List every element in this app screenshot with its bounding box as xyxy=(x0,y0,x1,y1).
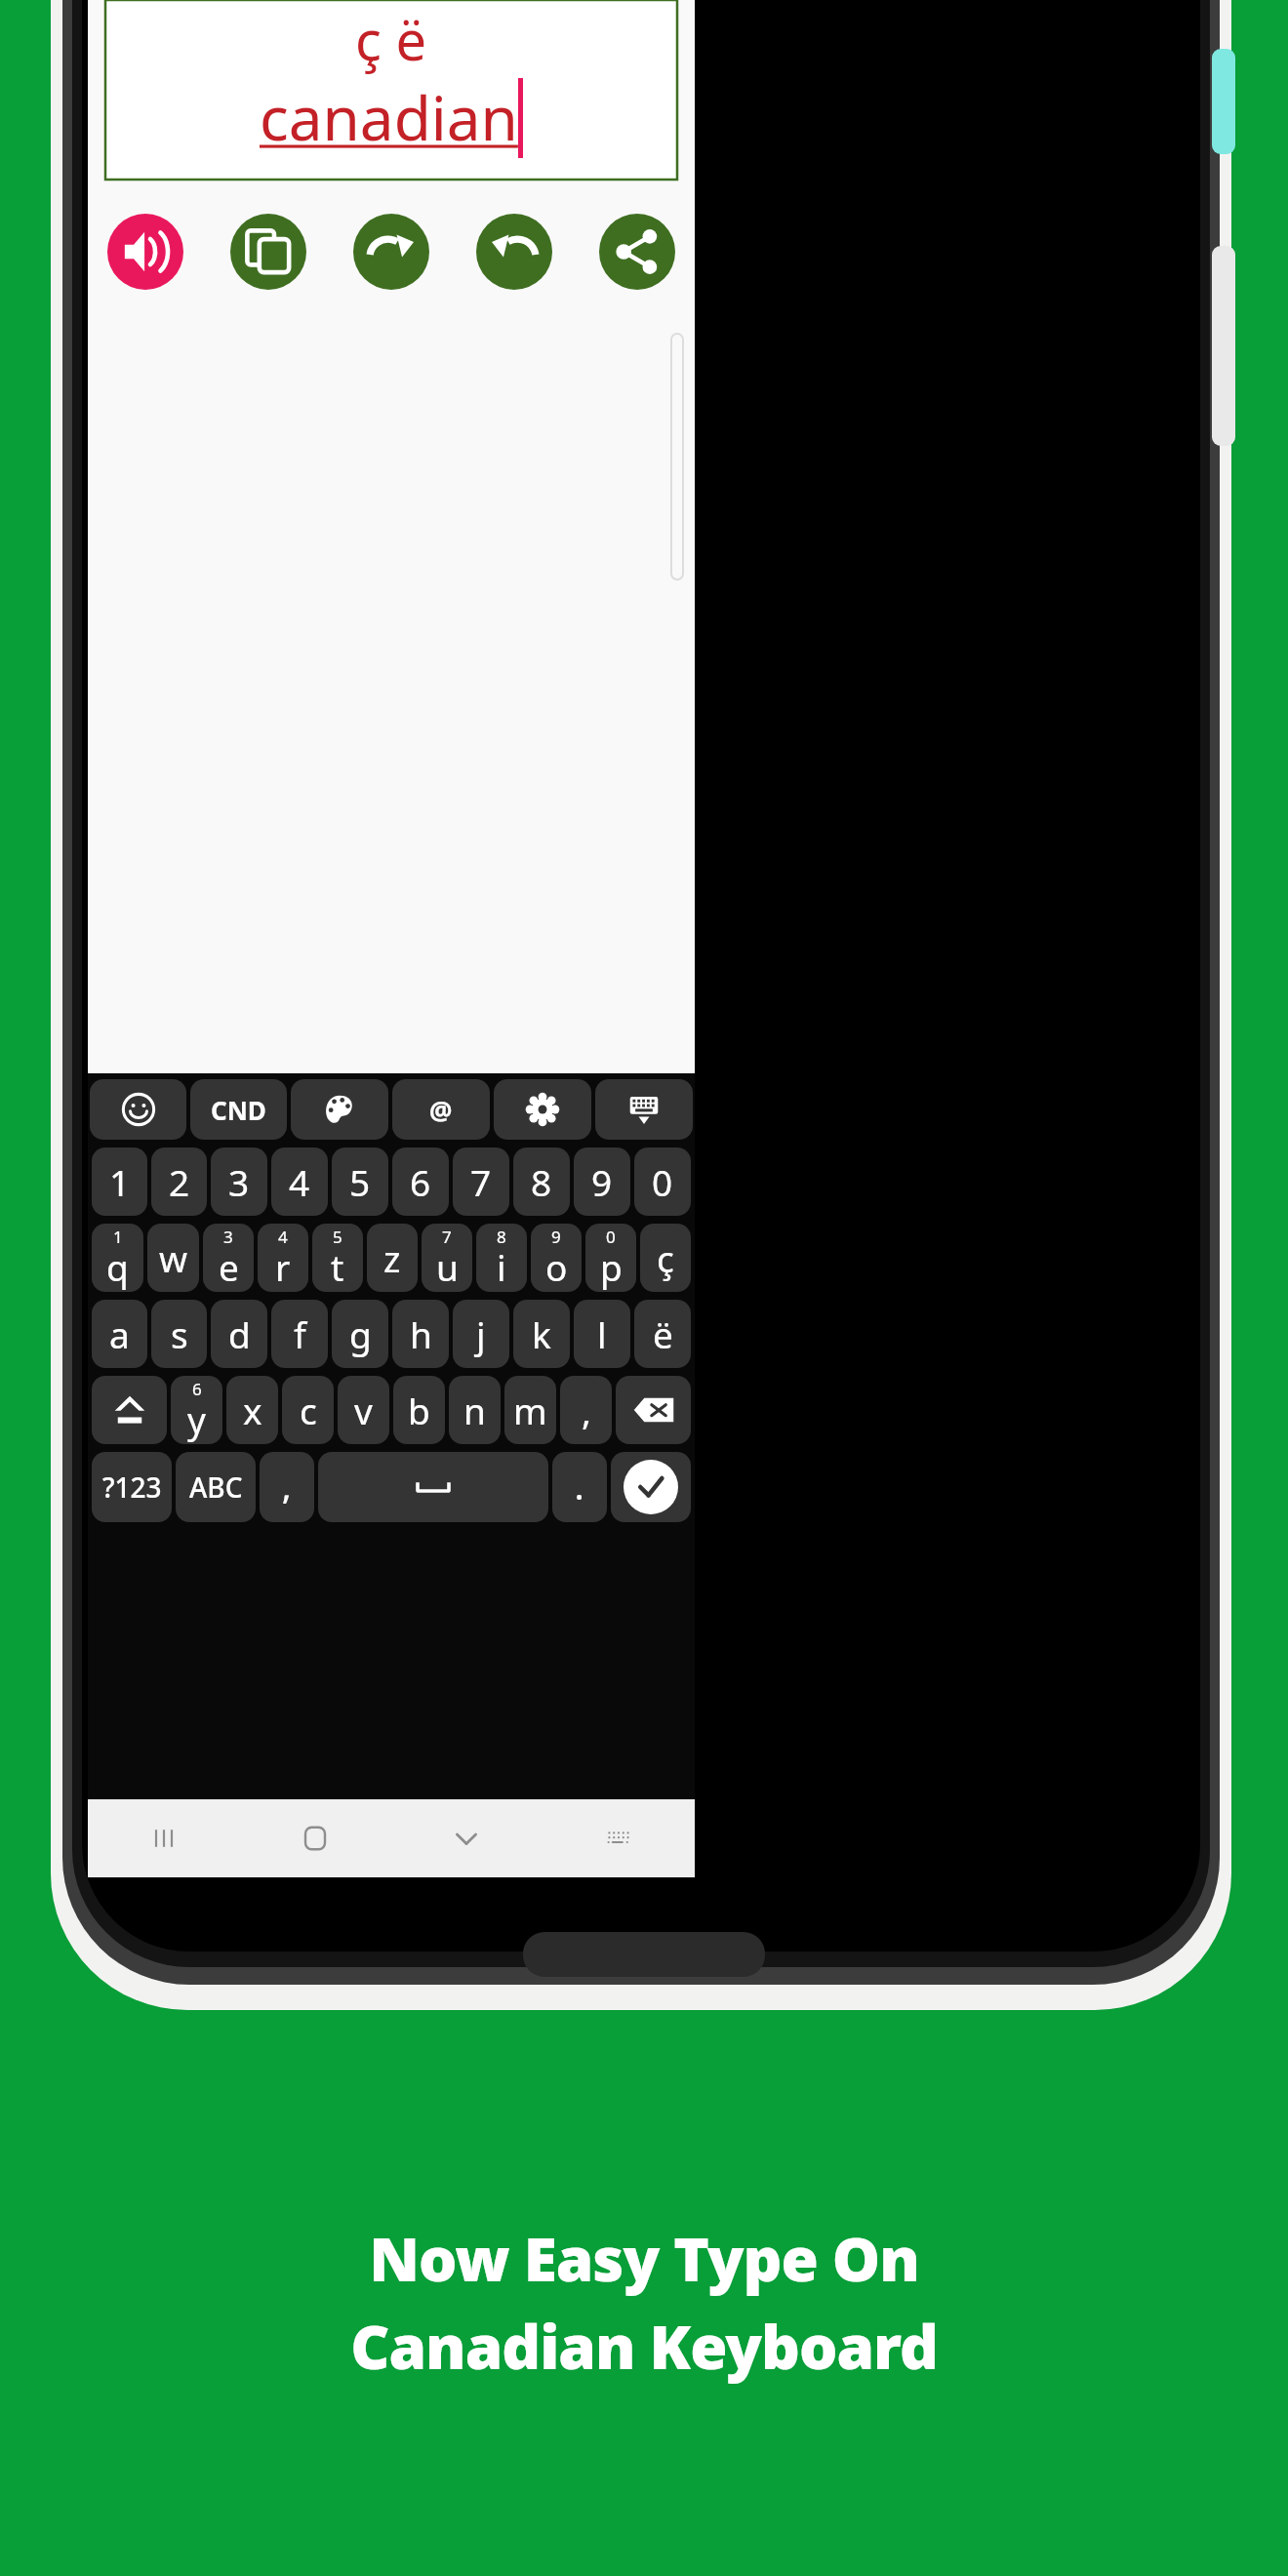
button[interactable]: Enter xyxy=(611,1452,691,1522)
button[interactable]: h xyxy=(392,1300,449,1368)
button[interactable]: 7 xyxy=(453,1147,509,1216)
button[interactable]: n xyxy=(449,1376,501,1444)
button[interactable]: Emoji xyxy=(90,1079,186,1140)
button[interactable]: 6 xyxy=(171,1376,222,1444)
staticText: q xyxy=(106,1242,129,1291)
button[interactable]: m xyxy=(504,1376,556,1444)
button[interactable]: 7 xyxy=(422,1224,472,1292)
staticText: Canadian Keyboard xyxy=(350,2305,938,2387)
staticText: p xyxy=(600,1242,623,1291)
staticText: v xyxy=(354,1386,373,1434)
staticText: 2 xyxy=(169,1157,190,1206)
staticText: i xyxy=(497,1242,506,1291)
button[interactable]: f xyxy=(271,1300,328,1368)
button[interactable]: CND xyxy=(190,1079,287,1140)
staticText: f xyxy=(294,1309,306,1358)
staticText: ?123 xyxy=(102,1469,162,1506)
button[interactable]: Share xyxy=(599,214,675,290)
button[interactable]: @ xyxy=(392,1079,490,1140)
staticText: 5 xyxy=(333,1226,342,1248)
button[interactable]: j xyxy=(453,1300,509,1368)
button[interactable]: 1 xyxy=(92,1147,147,1216)
staticText: ç ë xyxy=(355,2,427,76)
staticText: u xyxy=(436,1242,459,1291)
button[interactable]: Copy xyxy=(230,214,306,290)
button[interactable]: ABC xyxy=(176,1452,256,1522)
button[interactable]: Speak xyxy=(107,214,183,290)
staticText: 6 xyxy=(410,1157,431,1206)
button[interactable]: ç ë xyxy=(105,0,677,180)
button[interactable]: , xyxy=(560,1376,612,1444)
staticText: r xyxy=(275,1242,291,1291)
button[interactable]: w xyxy=(147,1224,199,1292)
staticText: 5 xyxy=(349,1157,371,1206)
button[interactable]: 1 xyxy=(92,1224,143,1292)
button[interactable]: d xyxy=(211,1300,267,1368)
staticText: e xyxy=(219,1242,239,1291)
button[interactable]: Theme xyxy=(291,1079,388,1140)
button[interactable]: Backspace xyxy=(616,1376,691,1444)
button[interactable]: 3 xyxy=(211,1147,267,1216)
staticText: 0 xyxy=(606,1226,616,1248)
staticText: d xyxy=(228,1309,251,1358)
staticText: a xyxy=(109,1309,130,1358)
staticText: ABC xyxy=(189,1469,243,1506)
button[interactable]: v xyxy=(338,1376,389,1444)
staticText: 1 xyxy=(109,1157,131,1206)
button[interactable]: k xyxy=(513,1300,570,1368)
button[interactable]: g xyxy=(332,1300,388,1368)
button[interactable]: 3 xyxy=(203,1224,254,1292)
button[interactable]: 8 xyxy=(513,1147,570,1216)
button[interactable]: l xyxy=(574,1300,630,1368)
button[interactable]: Home xyxy=(239,1799,390,1877)
button[interactable]: 9 xyxy=(531,1224,582,1292)
staticText: 6 xyxy=(192,1378,202,1400)
button[interactable]: 5 xyxy=(312,1224,363,1292)
staticText: c xyxy=(300,1386,317,1434)
button[interactable]: ë xyxy=(634,1300,691,1368)
button[interactable]: , xyxy=(260,1452,314,1522)
button[interactable]: 0 xyxy=(634,1147,691,1216)
staticText: 8 xyxy=(497,1226,506,1248)
button[interactable]: Switch keyboard xyxy=(543,1799,695,1877)
button[interactable]: . xyxy=(552,1452,607,1522)
button[interactable]: 6 xyxy=(392,1147,449,1216)
button[interactable]: 2 xyxy=(151,1147,207,1216)
staticText: m xyxy=(513,1386,547,1434)
staticText: w xyxy=(159,1233,188,1282)
button[interactable]: 4 xyxy=(271,1147,328,1216)
button[interactable]: 8 xyxy=(476,1224,527,1292)
staticText: 7 xyxy=(442,1226,452,1248)
staticText: . xyxy=(575,1465,584,1509)
staticText: k xyxy=(532,1309,551,1358)
button[interactable]: Shift xyxy=(92,1376,167,1444)
button[interactable]: c xyxy=(282,1376,334,1444)
staticText: 4 xyxy=(289,1157,310,1206)
button[interactable]: s xyxy=(151,1300,207,1368)
button[interactable]: x xyxy=(226,1376,278,1444)
button[interactable]: 0 xyxy=(585,1224,636,1292)
staticText: 3 xyxy=(223,1226,233,1248)
button[interactable]: b xyxy=(393,1376,445,1444)
staticText: 9 xyxy=(551,1226,561,1248)
button[interactable]: 5 xyxy=(332,1147,388,1216)
button[interactable]: Undo xyxy=(476,214,552,290)
staticText: 3 xyxy=(228,1157,250,1206)
button[interactable]: Back xyxy=(390,1799,543,1877)
button[interactable]: Recents xyxy=(88,1799,239,1877)
staticText: , xyxy=(282,1465,292,1509)
button[interactable]: Redo xyxy=(353,214,429,290)
button[interactable]: ?123 xyxy=(92,1452,172,1522)
staticText: h xyxy=(410,1309,432,1358)
button[interactable]: z xyxy=(367,1224,418,1292)
staticText: y xyxy=(187,1394,206,1443)
button[interactable]: 9 xyxy=(574,1147,630,1216)
button[interactable]: Space xyxy=(318,1452,548,1522)
button[interactable]: a xyxy=(92,1300,147,1368)
button[interactable]: 4 xyxy=(258,1224,308,1292)
button[interactable]: ç xyxy=(640,1224,691,1292)
staticText: ç xyxy=(657,1233,674,1282)
button[interactable]: Settings xyxy=(494,1079,591,1140)
button[interactable]: Hide keyboard xyxy=(595,1079,693,1140)
staticText: s xyxy=(171,1309,188,1358)
